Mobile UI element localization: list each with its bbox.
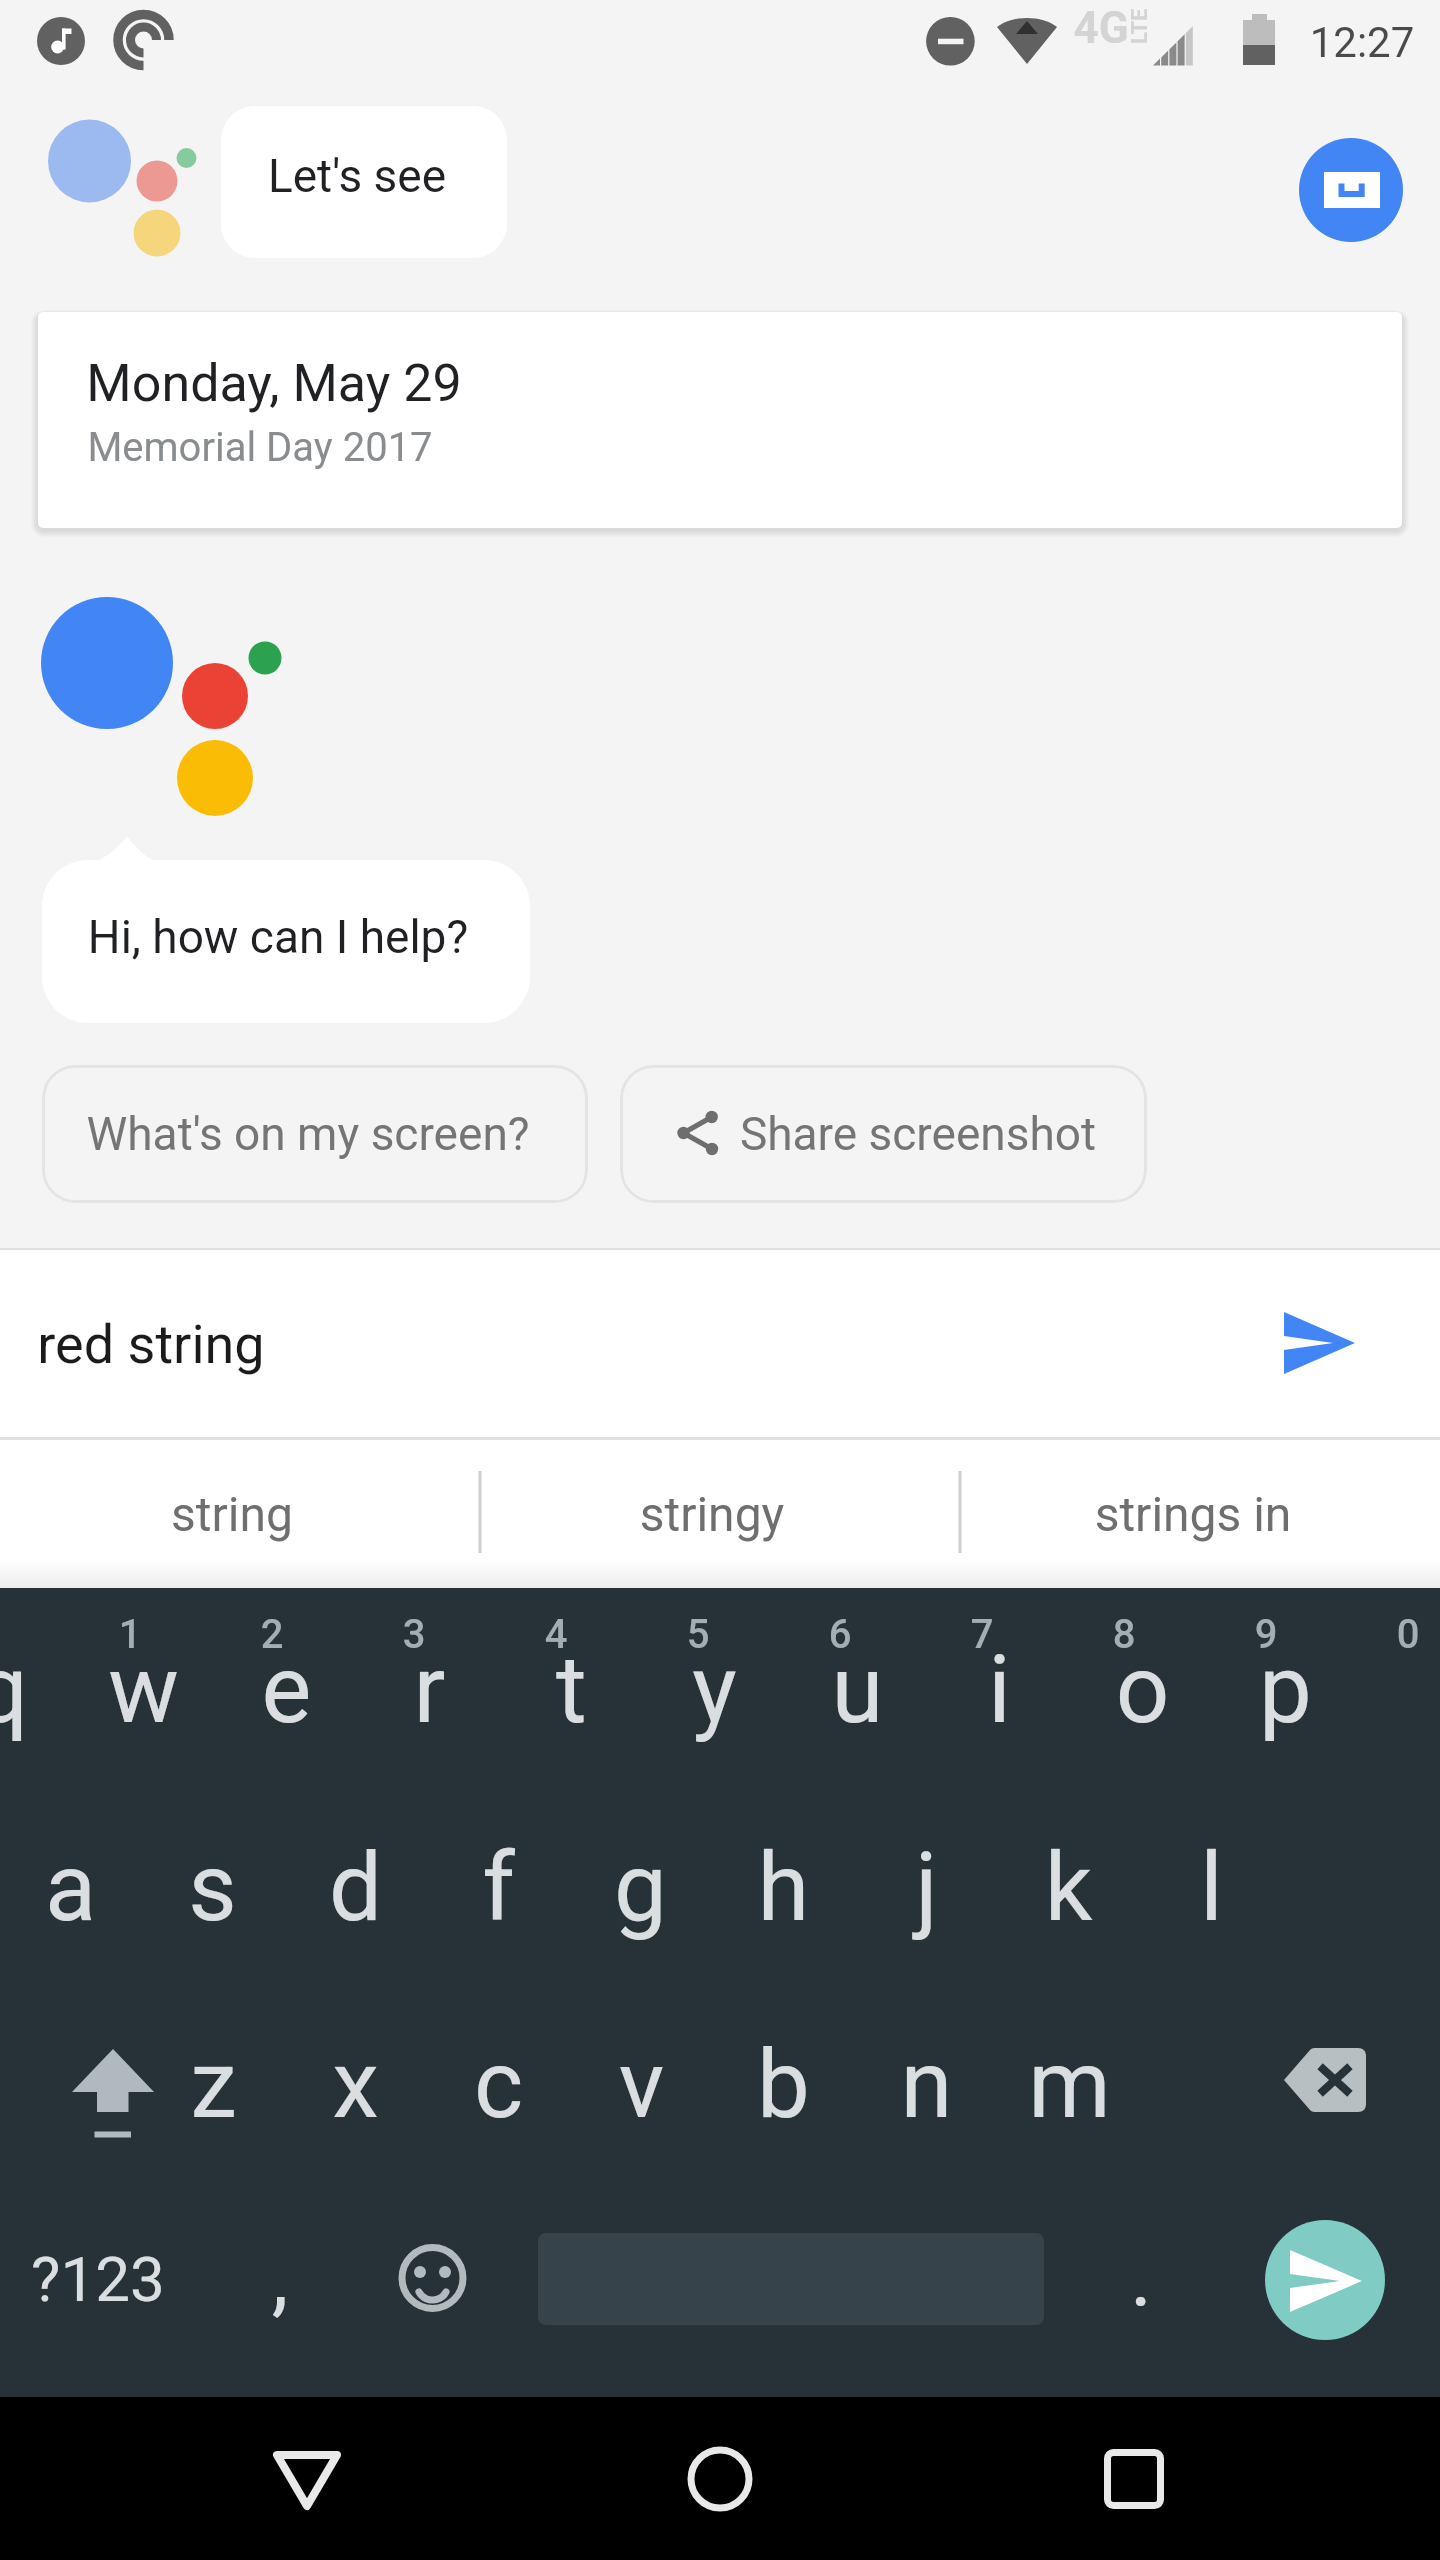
button[interactable]: y bbox=[722, 1588, 865, 1791]
button[interactable]: m bbox=[1077, 1994, 1220, 2197]
staticText: stringy bbox=[512, 1486, 912, 1542]
button[interactable]: z bbox=[221, 1994, 364, 2197]
button[interactable]: red string bbox=[0, 1250, 1440, 1437]
button[interactable]: w bbox=[151, 1588, 294, 1791]
staticText: Let's see bbox=[221, 149, 500, 203]
button[interactable]: o bbox=[1150, 1588, 1293, 1791]
staticText: red string bbox=[0, 1313, 351, 1376]
button[interactable]: string bbox=[0, 1440, 480, 1588]
button[interactable]: f bbox=[506, 1791, 649, 1994]
button[interactable]: Monday, May 29 bbox=[38, 312, 1402, 528]
staticText: 9 bbox=[1206, 1611, 1326, 1658]
staticText: What's on my screen? bbox=[42, 1107, 581, 1161]
button[interactable]: k bbox=[1076, 1791, 1219, 1994]
button[interactable]: Send bbox=[1260, 1284, 1378, 1402]
staticText: h bbox=[712, 1833, 855, 1943]
button[interactable]: Recent apps bbox=[1054, 2397, 1214, 2560]
staticText: 3 bbox=[354, 1611, 474, 1658]
staticText: s bbox=[141, 1833, 284, 1943]
button[interactable]: Shift bbox=[0, 1994, 216, 2197]
button[interactable]: . bbox=[1080, 2197, 1210, 2400]
button[interactable]: e bbox=[294, 1588, 437, 1791]
staticText: 2 bbox=[212, 1611, 332, 1658]
staticText: 6 bbox=[780, 1611, 900, 1658]
staticText: 8 bbox=[1064, 1611, 1184, 1658]
button[interactable]: Send message bbox=[1265, 2220, 1385, 2340]
button[interactable]: stringy bbox=[480, 1440, 960, 1588]
staticText: 0 bbox=[1348, 1611, 1440, 1658]
button[interactable]: n bbox=[934, 1994, 1077, 2197]
button[interactable]: u bbox=[865, 1588, 1008, 1791]
staticText: j bbox=[855, 1833, 998, 1943]
button[interactable]: ?123 bbox=[0, 2197, 230, 2400]
button[interactable]: , bbox=[230, 2197, 350, 2400]
button[interactable]: Let's see bbox=[221, 106, 507, 258]
staticText: 1 bbox=[70, 1611, 190, 1658]
button[interactable]: j bbox=[934, 1791, 1077, 1994]
staticText: 4 bbox=[496, 1611, 616, 1658]
button[interactable]: Home bbox=[640, 2397, 800, 2560]
staticText: Memorial Day 2017 bbox=[38, 424, 510, 471]
staticText: string bbox=[32, 1486, 432, 1542]
staticText: LTE bbox=[1127, 8, 1153, 44]
button[interactable]: x bbox=[363, 1994, 506, 2197]
staticText: 12:27 bbox=[1262, 18, 1440, 67]
button[interactable]: Keyboard input bbox=[1299, 138, 1403, 242]
staticText: f bbox=[427, 1833, 570, 1943]
staticText: 7 bbox=[922, 1611, 1042, 1658]
button[interactable]: What's on my screen? bbox=[42, 1065, 588, 1203]
staticText: w bbox=[72, 1635, 215, 1745]
staticText: b bbox=[712, 2030, 855, 2140]
button[interactable]: Backspace bbox=[1224, 1994, 1440, 2197]
staticText: 4G bbox=[1021, 2, 1181, 54]
button[interactable]: p bbox=[1293, 1588, 1436, 1791]
staticText: Monday, May 29 bbox=[38, 353, 524, 414]
button[interactable]: b bbox=[791, 1994, 934, 2197]
button[interactable]: g bbox=[648, 1791, 791, 1994]
staticText: l bbox=[1140, 1833, 1283, 1943]
button[interactable]: v bbox=[649, 1994, 792, 2197]
button[interactable]: c bbox=[506, 1994, 649, 2197]
staticText: z bbox=[142, 2030, 285, 2140]
staticText: p bbox=[1214, 1635, 1357, 1745]
staticText: c bbox=[427, 2030, 570, 2140]
staticText: v bbox=[570, 2030, 713, 2140]
button[interactable]: q bbox=[9, 1588, 152, 1791]
button[interactable]: strings in bbox=[960, 1440, 1440, 1588]
staticText: ?123 bbox=[0, 2243, 213, 2316]
staticText: m bbox=[998, 2030, 1141, 2140]
staticText: d bbox=[284, 1833, 427, 1943]
button[interactable]: Share screenshot bbox=[620, 1065, 1147, 1203]
button[interactable]: Emoji bbox=[362, 2197, 502, 2400]
staticText: y bbox=[643, 1635, 786, 1745]
button[interactable]: i bbox=[1007, 1588, 1150, 1791]
staticText: o bbox=[1071, 1635, 1214, 1745]
staticText: strings in bbox=[993, 1486, 1393, 1542]
button[interactable]: h bbox=[791, 1791, 934, 1994]
staticText: k bbox=[997, 1833, 1140, 1943]
staticText: , bbox=[220, 2228, 340, 2326]
staticText: a bbox=[0, 1833, 142, 1943]
button[interactable]: t bbox=[579, 1588, 722, 1791]
staticText: r bbox=[358, 1635, 501, 1745]
staticText: Hi, how can I help? bbox=[34, 910, 522, 964]
button[interactable]: Hi, how can I help? bbox=[42, 836, 530, 1023]
staticText: i bbox=[928, 1635, 1071, 1745]
button[interactable]: s bbox=[220, 1791, 363, 1994]
staticText: t bbox=[500, 1635, 643, 1745]
staticText: . bbox=[1076, 2228, 1206, 2326]
staticText: 5 bbox=[638, 1611, 758, 1658]
button[interactable]: d bbox=[363, 1791, 506, 1994]
staticText: n bbox=[855, 2030, 998, 2140]
staticText: g bbox=[569, 1833, 712, 1943]
staticText: Share screenshot bbox=[668, 1107, 1147, 1161]
staticText: x bbox=[284, 2030, 427, 2140]
staticText: e bbox=[215, 1635, 358, 1745]
button[interactable]: a bbox=[78, 1791, 221, 1994]
staticText: u bbox=[786, 1635, 929, 1745]
button[interactable]: Back bbox=[227, 2397, 387, 2560]
staticText: q bbox=[0, 1635, 73, 1745]
button[interactable]: r bbox=[437, 1588, 580, 1791]
